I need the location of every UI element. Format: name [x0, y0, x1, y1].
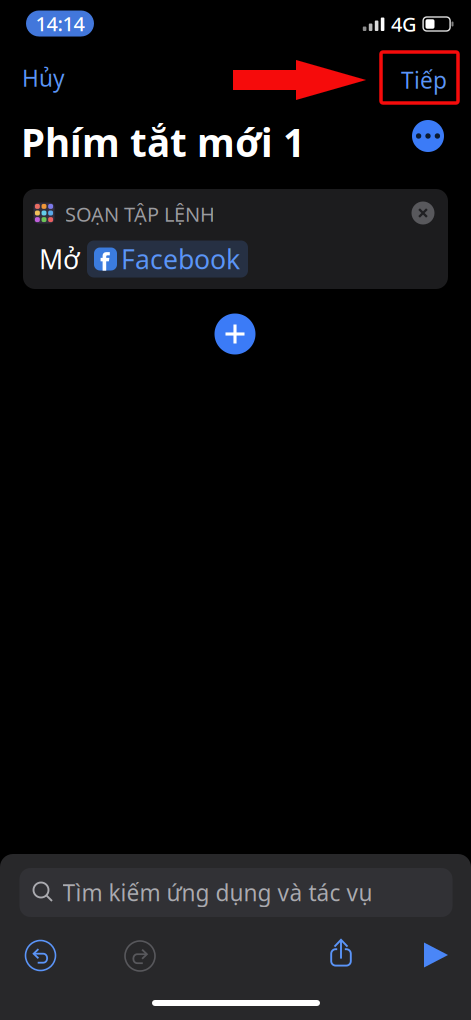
staticText: Facebook — [121, 241, 240, 277]
button[interactable]: Redo — [125, 941, 155, 971]
staticText: 4G — [391, 11, 417, 37]
staticText: 14:14 — [35, 10, 84, 37]
button[interactable]: More options — [412, 120, 444, 152]
staticText: Phím tắt mới 1 — [21, 116, 305, 168]
button[interactable]: Hủy — [0, 56, 102, 100]
button[interactable]: Run shortcut — [421, 941, 450, 969]
staticText: Tiếp — [401, 65, 447, 95]
button[interactable]: Share — [326, 937, 356, 973]
button[interactable]: Facebook — [87, 240, 248, 277]
button[interactable]: Tiếp — [367, 58, 471, 102]
button[interactable]: Remove action — [411, 201, 434, 224]
staticText: Tìm kiếm ứng dụng và tác vụ — [62, 877, 372, 907]
button[interactable]: Undo — [25, 940, 55, 970]
staticText: SOẠN TẬP LỆNH — [65, 201, 215, 227]
button[interactable]: Add action — [214, 313, 255, 354]
staticText: Hủy — [22, 63, 65, 93]
staticText: Mở — [39, 241, 79, 277]
